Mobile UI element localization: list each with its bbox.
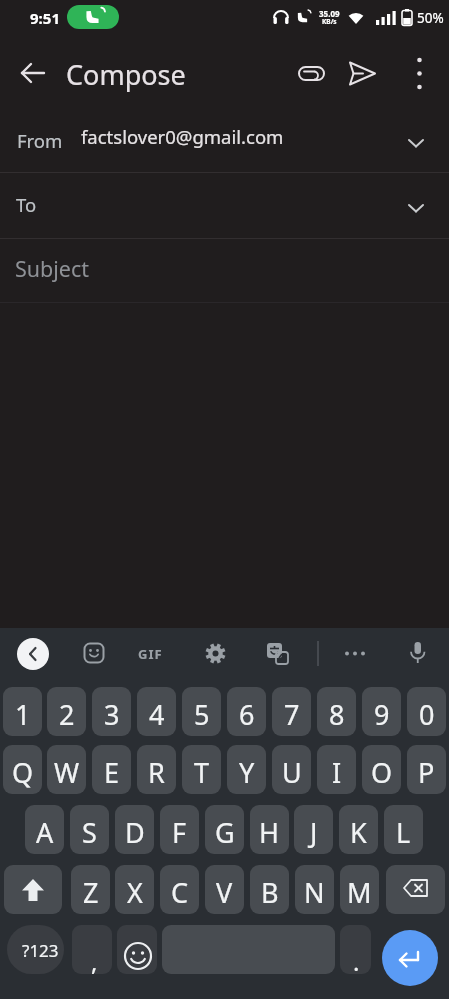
staticText: H [259,814,280,851]
button[interactable]: 6 [227,687,266,736]
staticText: G [215,814,235,851]
button[interactable]: C [160,865,199,914]
staticText: 8 [329,696,345,733]
staticText: 1 [15,696,31,733]
button[interactable]: Q [3,745,42,794]
staticText: , [91,945,98,974]
button[interactable] [14,54,52,92]
button[interactable]: E [92,745,131,794]
button[interactable]: 4 [137,687,176,736]
staticText: Subject [15,254,90,283]
staticText: GIF [138,645,163,663]
button[interactable]: R [137,745,176,794]
staticText: Z [83,874,99,911]
button[interactable] [295,57,328,90]
button[interactable] [382,930,438,986]
button[interactable] [403,57,436,90]
button[interactable]: ?123 [7,925,64,974]
staticText: 9 [374,696,390,733]
button[interactable]: H [250,805,289,854]
button[interactable]: S [70,805,109,854]
button[interactable]: O [362,745,401,794]
button[interactable]: From [0,112,449,172]
button[interactable]: G [205,805,244,854]
button[interactable]: K [339,805,378,854]
button[interactable]: I [317,745,356,794]
staticText: J [310,814,318,851]
button[interactable] [405,640,430,667]
button[interactable]: GIF [138,645,168,663]
button[interactable] [346,57,379,90]
staticText: O [371,754,393,791]
button[interactable] [117,925,157,974]
staticText: K [350,814,367,851]
staticText: X [127,874,143,911]
button[interactable]: W [47,745,86,794]
button[interactable]: P [407,745,446,794]
staticText: P [418,754,435,791]
button[interactable]: D [115,805,154,854]
staticText: . [353,945,360,974]
button[interactable] [4,865,62,914]
button[interactable]: , [72,925,112,974]
button[interactable] [67,5,119,29]
button[interactable] [341,641,369,666]
button[interactable] [265,641,290,666]
button[interactable] [386,865,445,914]
staticText: A [36,814,54,851]
button[interactable]: 1 [3,687,42,736]
button[interactable]: N [295,865,334,914]
staticText: M [347,874,372,911]
staticText: 4 [149,696,165,733]
button[interactable]: X [115,865,154,914]
staticText: Y [239,754,255,791]
staticText: 6 [239,696,255,733]
button[interactable] [203,641,228,666]
button[interactable]: J [294,805,333,854]
staticText: 5 [194,696,210,733]
button[interactable]: Y [227,745,266,794]
staticText: I [332,754,342,791]
staticText: C [171,874,189,911]
button[interactable]: L [384,805,423,854]
staticText: 3 [104,696,120,733]
button[interactable]: 7 [272,687,311,736]
staticText: 35.09 [319,8,340,19]
button[interactable]: A [25,805,64,854]
staticText: S [82,814,97,851]
button[interactable]: 5 [182,687,221,736]
button[interactable]: U [272,745,311,794]
staticText: L [396,814,411,851]
staticText: 7 [284,696,300,733]
button[interactable]: Z [71,865,110,914]
button[interactable]: M [340,865,379,914]
staticText: U [282,754,302,791]
button[interactable]: 9 [362,687,401,736]
button[interactable]: 3 [92,687,131,736]
staticText: Q [12,754,34,791]
button[interactable]: T [182,745,221,794]
button[interactable]: . [340,925,371,974]
button[interactable] [17,638,49,670]
button[interactable]: F [160,805,199,854]
staticText: E [104,754,120,791]
staticText: 50% [417,9,444,27]
button[interactable]: To [0,173,449,238]
staticText: F [172,814,187,851]
staticText: V [216,874,233,911]
staticText: 9:51 [30,8,60,28]
button[interactable]: 0 [407,687,446,736]
button[interactable]: V [205,865,244,914]
staticText: 0 [419,696,435,733]
button[interactable] [82,641,107,666]
button[interactable]: Subject [0,239,449,302]
button[interactable]: 8 [317,687,356,736]
button[interactable]: 2 [47,687,86,736]
staticText: KB/s [322,17,337,26]
staticText: From [17,128,63,153]
button[interactable]: B [250,865,289,914]
staticText: 2 [59,696,75,733]
staticText: R [148,754,165,791]
staticText: W [54,754,80,791]
